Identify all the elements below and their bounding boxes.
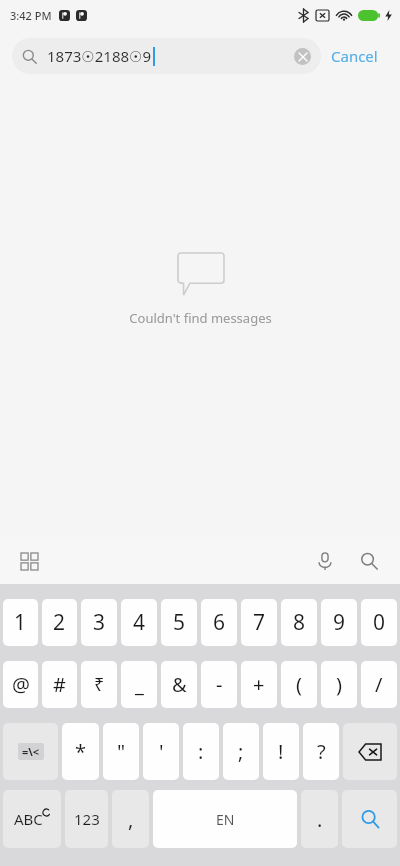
staticText: Cancel [331, 46, 378, 66]
button[interactable]: ( [281, 661, 317, 708]
button[interactable]: : [183, 723, 219, 780]
staticText: 123 [74, 809, 100, 829]
staticText: 5 [173, 608, 186, 637]
button[interactable]: 2 [42, 599, 77, 646]
button[interactable]: Voice input [308, 544, 342, 578]
staticText: 2 [53, 608, 66, 637]
staticText: 3 [93, 608, 106, 637]
button[interactable]: ) [321, 661, 357, 708]
button[interactable]: 4 [121, 599, 157, 646]
staticText: ( [296, 671, 302, 698]
button[interactable]: ' [143, 723, 179, 780]
button[interactable]: 1873☉2188☉9 [12, 38, 321, 74]
button[interactable]: , [112, 790, 149, 848]
button[interactable]: _ [121, 661, 157, 708]
staticText: 7 [253, 608, 266, 637]
staticText: @ [12, 671, 30, 698]
staticText: # [53, 671, 66, 698]
button[interactable]: - [201, 661, 237, 708]
staticText: ABC [14, 809, 43, 829]
staticText: 1 [14, 608, 27, 637]
staticText: , [128, 806, 134, 833]
staticText: ) [336, 671, 342, 698]
button[interactable]: 0 [361, 599, 397, 646]
staticText: - [216, 671, 223, 698]
button[interactable]: Search [342, 790, 397, 848]
staticText: 6 [213, 608, 226, 637]
button[interactable]: 1 [3, 599, 38, 646]
button[interactable]: @ [3, 661, 38, 708]
staticText: . [317, 806, 323, 833]
button[interactable]: 5 [161, 599, 197, 646]
button[interactable]: Keyboard apps [12, 544, 46, 578]
staticText: Couldn't find messages [129, 309, 272, 327]
button[interactable]: ; [223, 723, 259, 780]
button[interactable]: 3 [81, 599, 117, 646]
staticText: ; [238, 738, 244, 765]
button[interactable]: ! [263, 723, 299, 780]
staticText: & [172, 671, 187, 698]
staticText: 8 [293, 608, 306, 637]
button[interactable]: ? [303, 723, 339, 780]
button[interactable]: 9 [321, 599, 357, 646]
button[interactable]: 6 [201, 599, 237, 646]
button[interactable]: & [161, 661, 197, 708]
button[interactable]: + [241, 661, 277, 708]
button[interactable]: . [301, 790, 338, 848]
staticText: 4 [133, 608, 146, 637]
staticText: 1873☉2188☉9 [47, 46, 152, 66]
button[interactable]: " [103, 723, 139, 780]
staticText: : [198, 738, 204, 765]
button[interactable]: Switch to letters [3, 790, 61, 848]
button[interactable]: * [62, 723, 99, 780]
staticText: 0 [373, 608, 386, 637]
button[interactable]: Symbols [3, 723, 58, 780]
button[interactable]: # [42, 661, 77, 708]
button[interactable]: 8 [281, 599, 317, 646]
staticText: ₹ [94, 672, 105, 697]
staticText: _ [135, 671, 144, 698]
button[interactable]: Search [352, 544, 386, 578]
staticText: ' [159, 738, 164, 765]
staticText: =\< [22, 744, 40, 759]
staticText: 9 [333, 608, 346, 637]
staticText: ? [317, 738, 326, 765]
button[interactable]: Backspace [343, 723, 397, 780]
staticText: EN [216, 810, 235, 829]
staticText: 3:42 PM [10, 8, 52, 23]
button[interactable]: / [361, 661, 397, 708]
staticText: ! [278, 738, 284, 765]
button[interactable]: Clear search [294, 48, 311, 65]
button[interactable]: Cancel [321, 40, 388, 72]
staticText: / [375, 671, 383, 698]
button[interactable]: ₹ [81, 661, 117, 708]
staticText: " [117, 738, 126, 765]
staticText: + [253, 671, 265, 698]
button[interactable]: 123 [65, 790, 108, 848]
button[interactable]: 7 [241, 599, 277, 646]
staticText: * [75, 738, 87, 765]
button[interactable]: EN [153, 790, 297, 848]
